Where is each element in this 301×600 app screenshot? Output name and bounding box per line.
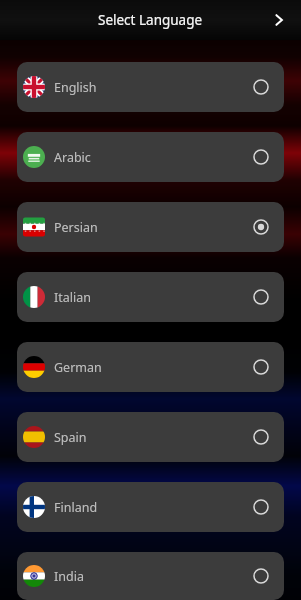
staticText: India bbox=[54, 568, 84, 585]
button[interactable]: Italian bbox=[17, 272, 284, 322]
button[interactable]: German bbox=[17, 342, 284, 392]
staticText: Spain bbox=[54, 429, 87, 446]
button[interactable]: Next bbox=[263, 4, 295, 36]
staticText: Italian bbox=[54, 289, 91, 306]
button[interactable]: Arabic bbox=[17, 132, 284, 182]
staticText: Persian bbox=[54, 219, 98, 236]
staticText: Select Language bbox=[98, 11, 203, 29]
staticText: English bbox=[54, 79, 97, 96]
staticText: Arabic bbox=[54, 149, 91, 166]
button[interactable]: Finland bbox=[17, 482, 284, 532]
staticText: Finland bbox=[54, 499, 98, 516]
button[interactable]: English bbox=[17, 62, 284, 112]
button[interactable]: Persian bbox=[17, 202, 284, 252]
staticText: German bbox=[54, 359, 102, 376]
button[interactable]: Spain bbox=[17, 412, 284, 462]
button[interactable]: India bbox=[17, 552, 284, 600]
